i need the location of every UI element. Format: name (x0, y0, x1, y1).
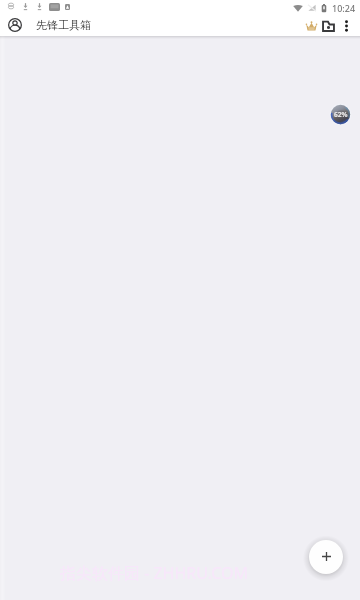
button[interactable]: More options (336, 16, 356, 36)
staticText: 62% (334, 110, 348, 119)
button[interactable]: Account (5, 16, 25, 36)
button[interactable]: Files (318, 16, 338, 36)
staticText: 先锋工具箱 (36, 18, 91, 32)
button[interactable]: Premium (301, 16, 321, 36)
button[interactable]: Memory usage 62 percent (329, 103, 352, 126)
staticText: 10:24 (332, 2, 356, 14)
button[interactable]: Add (309, 540, 343, 574)
